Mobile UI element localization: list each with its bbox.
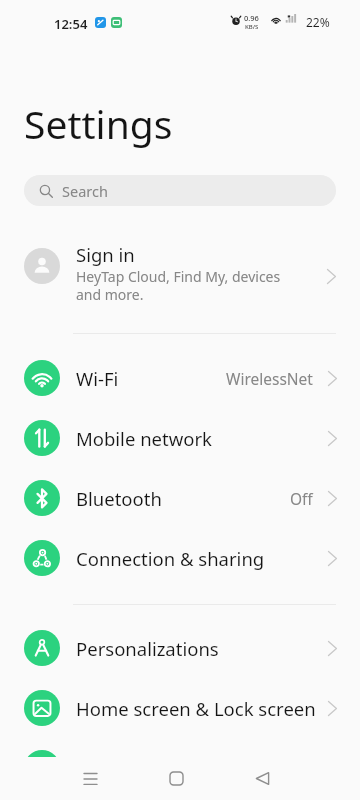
staticText: Home screen & Lock screen [76, 696, 316, 721]
button[interactable]: Home [154, 756, 198, 800]
staticText: Search [62, 181, 108, 201]
staticText: Wi-Fi [76, 366, 119, 391]
button[interactable]: Home screen & Lock screen [0, 678, 360, 738]
button[interactable]: Personalizations [0, 618, 360, 678]
staticText: Settings [24, 97, 173, 150]
button[interactable]: Notifications & status bar [0, 738, 360, 757]
staticText: KB/S [245, 23, 259, 31]
staticText: Sign in [76, 242, 135, 267]
staticText: 22% [306, 14, 330, 30]
button[interactable]: Search [24, 175, 336, 206]
button[interactable]: Back [240, 756, 284, 800]
staticText: WirelessNet [226, 368, 313, 389]
staticText: Connection & sharing [76, 546, 265, 571]
staticText: Mobile network [76, 426, 212, 451]
button[interactable]: Wi-Fi [0, 348, 360, 408]
staticText: HeyTap Cloud, Find My, devices and more. [76, 267, 288, 304]
button[interactable]: Connection & sharing [0, 528, 360, 588]
staticText: Bluetooth [76, 486, 162, 511]
staticText: Off [290, 488, 313, 509]
staticText: 0.96 [244, 13, 259, 23]
button[interactable]: Bluetooth [0, 468, 360, 528]
staticText: 12:54 [54, 15, 88, 33]
button[interactable]: Recent apps [68, 756, 112, 800]
button[interactable]: Mobile network [0, 408, 360, 468]
button[interactable]: Sign in [0, 228, 360, 324]
staticText: Personalizations [76, 636, 219, 661]
